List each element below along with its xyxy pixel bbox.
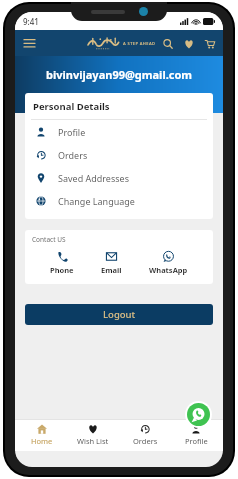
button[interactable]: Change Language [25,189,213,212]
button[interactable]: Wish List [69,419,117,451]
button[interactable]: WhatsApp [143,250,194,276]
button[interactable]: Profile [25,120,213,143]
staticText: Profile [58,126,86,138]
button[interactable]: Cart [201,35,218,52]
staticText: Profile [185,436,208,446]
button[interactable]: Chat on WhatsApp [187,403,210,426]
staticText: WhatsApp [149,265,188,275]
staticText: bivinvijayan99@gmail.com [15,67,223,82]
button[interactable]: Profile [172,419,220,451]
staticText: Email [101,265,122,275]
button[interactable]: Saved Addresses [25,166,213,189]
button[interactable]: Menu [19,33,39,53]
staticText: Change Language [58,195,135,207]
button[interactable]: Email [95,250,128,276]
staticText: Home [31,436,53,446]
button[interactable]: Orders [25,143,213,166]
staticText: Saved Addresses [58,172,129,184]
staticText: Orders [58,149,88,161]
staticText: A STEP AHEAD [123,41,156,46]
staticText: Contact US [32,235,66,244]
staticText: 9:41 [23,16,39,27]
button[interactable]: Logout [25,304,213,325]
button[interactable]: Phone [44,250,80,276]
staticText: Logout [103,308,136,321]
staticText: Personal Details [33,100,110,113]
button[interactable]: Home [18,419,66,451]
button[interactable]: Orders [121,419,169,451]
staticText: Orders [133,436,158,446]
button[interactable]: Search [159,35,176,52]
staticText: Phone [50,265,74,275]
button[interactable]: Wish list [180,35,197,52]
staticText: Wish List [77,436,109,446]
